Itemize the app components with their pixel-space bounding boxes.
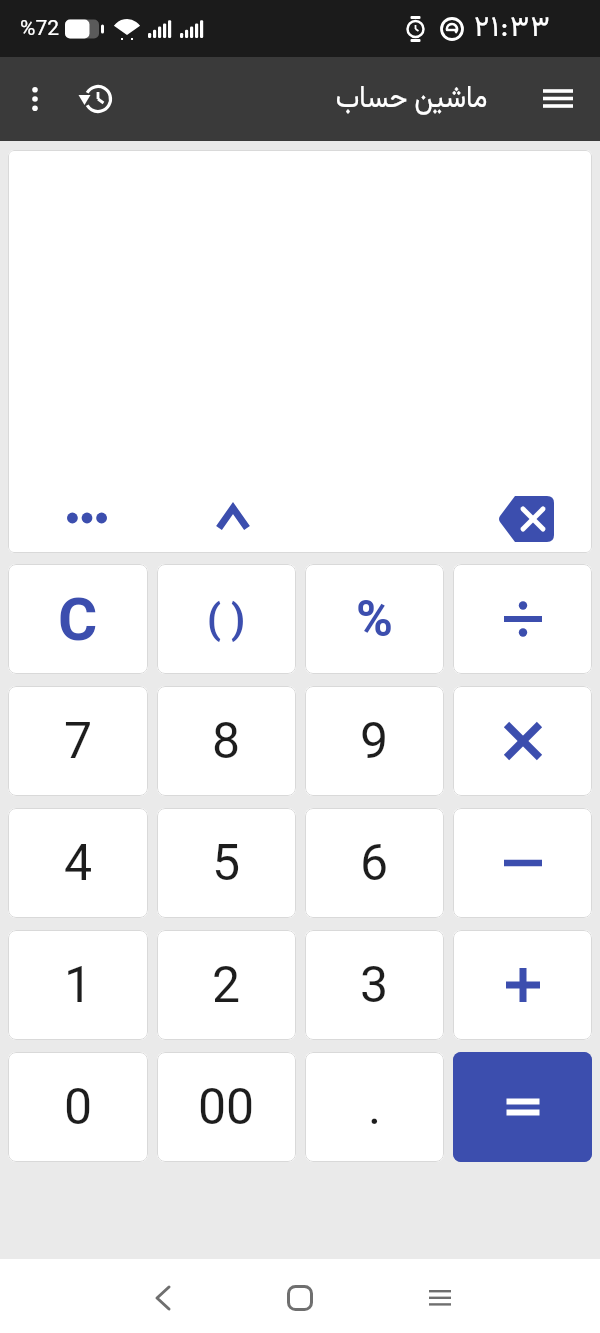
button[interactable]: 6 <box>305 808 444 918</box>
staticText: ( <box>207 596 222 643</box>
button[interactable]: . <box>305 1052 444 1162</box>
button[interactable]: 0 <box>8 1052 148 1162</box>
button[interactable]: ( <box>157 564 296 674</box>
staticText: 8 <box>212 712 241 771</box>
staticText: 00 <box>198 1078 255 1137</box>
button[interactable]: 4 <box>8 808 148 918</box>
staticText: 1 <box>64 956 93 1015</box>
button[interactable]: 7 <box>8 686 148 796</box>
staticText: %72 <box>20 16 59 41</box>
button[interactable] <box>64 495 110 541</box>
staticText: ) <box>231 596 246 643</box>
staticText: 4 <box>64 834 93 893</box>
button[interactable] <box>210 495 256 541</box>
button[interactable]: 5 <box>157 808 296 918</box>
staticText: C <box>58 584 98 654</box>
button[interactable]: 8 <box>157 686 296 796</box>
button[interactable] <box>495 493 557 545</box>
staticText: ماشین حساب <box>336 75 488 123</box>
staticText: 7 <box>64 712 93 771</box>
staticText: 6 <box>360 834 389 893</box>
button[interactable] <box>74 77 118 121</box>
button[interactable]: 9 <box>305 686 444 796</box>
button[interactable] <box>534 75 582 123</box>
button[interactable] <box>453 808 592 918</box>
button[interactable]: 00 <box>157 1052 296 1162</box>
staticText: . <box>368 1078 382 1137</box>
staticText: ۲۱:۳۳ <box>474 6 552 51</box>
button[interactable] <box>453 930 592 1040</box>
button[interactable] <box>453 564 592 674</box>
button[interactable]: 3 <box>305 930 444 1040</box>
button[interactable] <box>453 686 592 796</box>
staticText: 9 <box>360 712 389 771</box>
staticText: 3 <box>360 956 389 1015</box>
button[interactable] <box>418 1276 462 1320</box>
button[interactable] <box>13 77 57 121</box>
staticText: 2 <box>212 956 241 1015</box>
button[interactable]: 1 <box>8 930 148 1040</box>
staticText: 0 <box>64 1078 93 1137</box>
staticText: 5 <box>212 834 241 893</box>
button[interactable] <box>141 1276 185 1320</box>
button[interactable] <box>453 1052 592 1162</box>
button[interactable]: 2 <box>157 930 296 1040</box>
button[interactable] <box>278 1276 322 1320</box>
button[interactable]: C <box>8 564 148 674</box>
staticText: % <box>356 590 393 649</box>
button[interactable]: % <box>305 564 444 674</box>
